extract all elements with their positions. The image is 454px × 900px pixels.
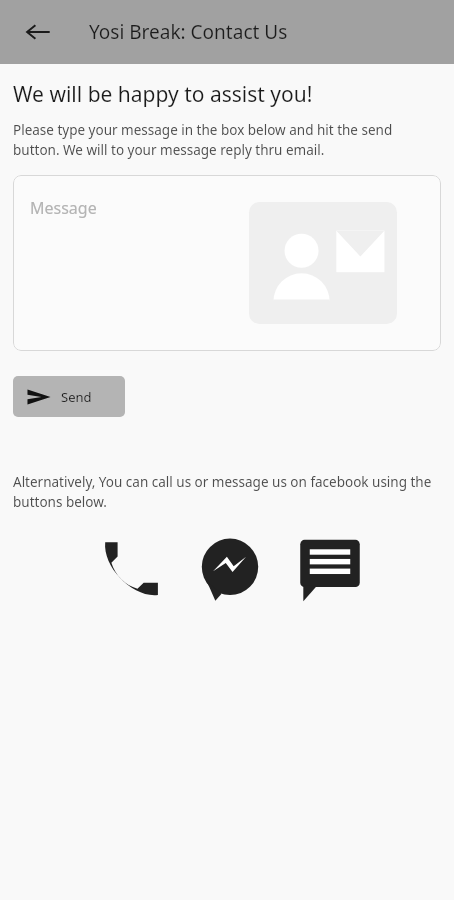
button[interactable]: Message	[13, 175, 441, 351]
staticText: Please type your message in the box belo…	[13, 121, 441, 159]
button[interactable]: Chat with us	[294, 533, 366, 605]
staticText: Message	[30, 197, 97, 219]
staticText: Yosi Break: Contact Us	[89, 19, 288, 45]
button[interactable]: Back	[14, 8, 62, 56]
staticText: Send	[61, 388, 92, 406]
staticText: Alternatively, You can call us or messag…	[13, 473, 441, 511]
button[interactable]: Message us on Messenger	[194, 533, 266, 605]
staticText: We will be happy to assist you!	[13, 80, 313, 109]
button[interactable]: Send	[13, 376, 125, 417]
button[interactable]: Call us	[94, 533, 166, 605]
